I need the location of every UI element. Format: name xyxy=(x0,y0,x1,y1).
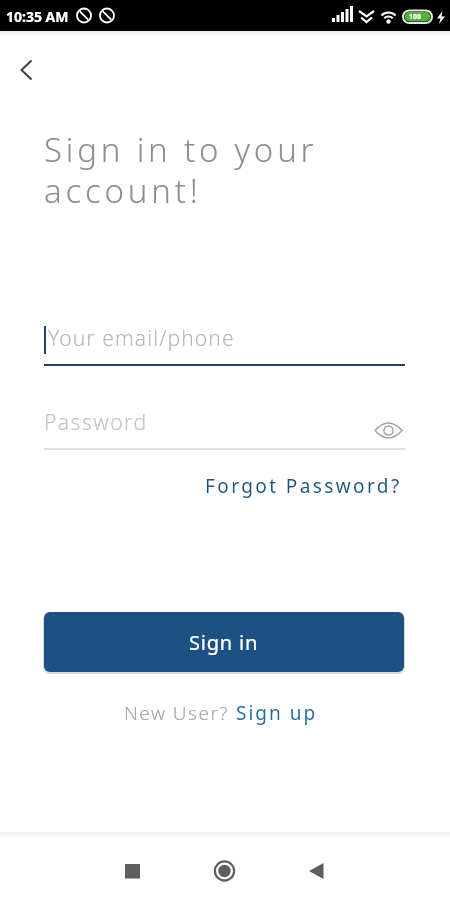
button[interactable]: Forgot Password? xyxy=(0,473,402,499)
staticText: New User? xyxy=(124,700,236,726)
button[interactable] xyxy=(150,832,300,900)
staticText: Forgot Password? xyxy=(205,473,402,499)
staticText: Sign in to your account! xyxy=(44,127,318,213)
staticText: Sign up xyxy=(236,700,318,726)
staticText: Sign in xyxy=(189,629,259,656)
staticText: 100 xyxy=(409,12,422,22)
button[interactable]: Sign in xyxy=(44,612,404,672)
button[interactable]: Sign up xyxy=(236,700,318,726)
staticText: 10:35 AM xyxy=(6,7,69,26)
button[interactable] xyxy=(0,832,150,900)
button[interactable] xyxy=(10,52,44,86)
staticText: Password xyxy=(44,408,148,437)
button[interactable] xyxy=(372,419,404,441)
button[interactable] xyxy=(300,832,450,900)
staticText: Your email/phone xyxy=(48,324,235,353)
